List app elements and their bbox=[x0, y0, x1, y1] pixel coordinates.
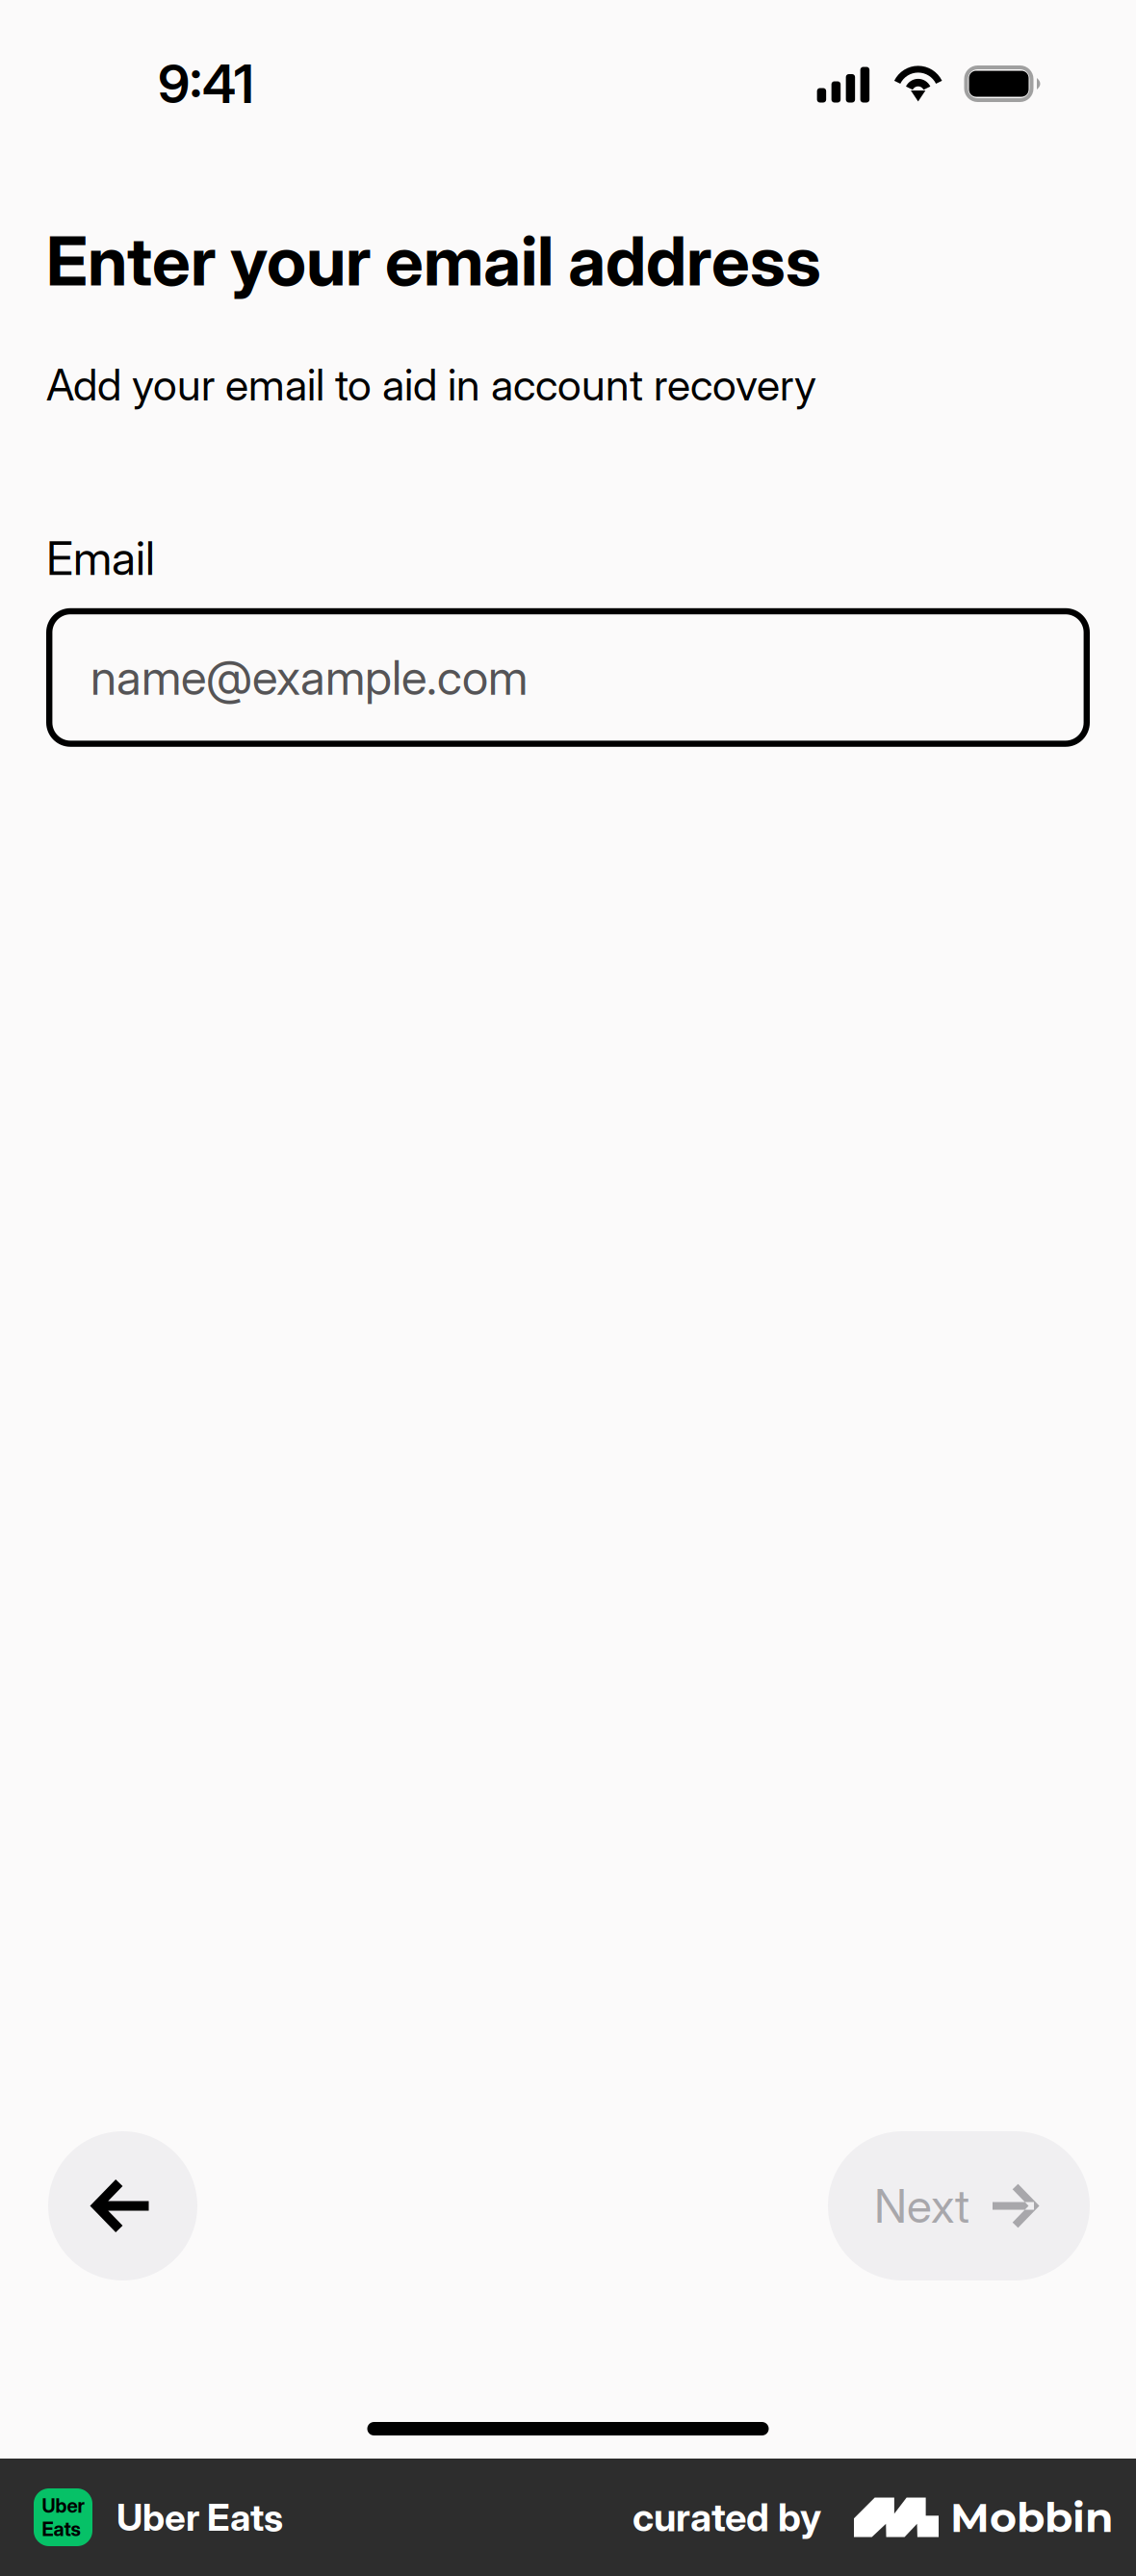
staticText: Eats bbox=[42, 2517, 80, 2541]
staticText: name@example.com bbox=[90, 649, 528, 706]
staticText: 9:41 bbox=[158, 52, 254, 116]
staticText: curated by bbox=[633, 2494, 821, 2541]
staticText: Add your email to aid in account recover… bbox=[46, 359, 816, 411]
button[interactable]: name@example.com bbox=[46, 608, 1090, 747]
staticText: Next bbox=[874, 2178, 969, 2234]
staticText: Uber Eats bbox=[116, 2495, 283, 2540]
staticText: Enter your email address bbox=[46, 219, 821, 302]
staticText: Uber bbox=[42, 2494, 84, 2517]
staticText: Mobbin bbox=[950, 2492, 1113, 2542]
staticText: Email bbox=[46, 530, 155, 586]
button[interactable]: Next bbox=[828, 2131, 1090, 2280]
button[interactable]: Back bbox=[48, 2131, 197, 2280]
